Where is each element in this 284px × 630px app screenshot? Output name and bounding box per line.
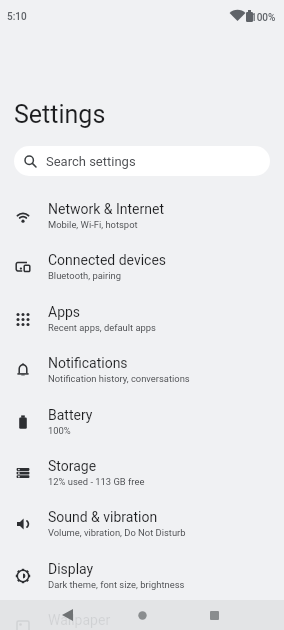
button[interactable]: Wallpaper — [0, 601, 284, 630]
staticText: 12% used - 113 GB free — [48, 476, 145, 487]
button[interactable]: Apps — [0, 293, 284, 344]
staticText: 5:10 — [7, 11, 27, 23]
button[interactable]: Notifications — [0, 344, 284, 395]
button[interactable]: Display — [0, 550, 284, 601]
staticText: Volume, vibration, Do Not Disturb — [48, 527, 186, 538]
staticText: Bluetooth, pairing — [48, 270, 121, 281]
staticText: Recent apps, default apps — [48, 322, 156, 333]
staticText: Battery — [48, 407, 93, 423]
staticText: Search settings — [46, 154, 136, 169]
button[interactable]: Connected devices — [0, 241, 284, 292]
button[interactable] — [130, 600, 154, 630]
staticText: Connected devices — [48, 252, 167, 268]
button[interactable] — [202, 600, 226, 630]
staticText: 100% — [251, 12, 276, 24]
button[interactable]: Network & Internet — [0, 190, 284, 241]
staticText: Apps — [48, 304, 81, 320]
staticText: Network & Internet — [48, 201, 165, 217]
button[interactable]: Battery — [0, 396, 284, 447]
staticText: Wallpaper — [48, 612, 111, 628]
button[interactable]: Sound & vibration — [0, 498, 284, 549]
staticText: Notifications — [48, 355, 128, 371]
button[interactable]: Search settings — [14, 146, 270, 176]
staticText: Display — [48, 561, 94, 577]
button[interactable]: Storage — [0, 447, 284, 498]
staticText: 100% — [48, 425, 71, 436]
staticText: Notification history, conversations — [48, 373, 190, 384]
staticText: Dark theme, font size, brightness — [48, 579, 185, 590]
staticText: Sound & vibration — [48, 509, 158, 525]
staticText: Storage — [48, 458, 97, 474]
staticText: Settings — [14, 100, 106, 129]
staticText: Mobile, Wi-Fi, hotspot — [48, 219, 138, 230]
button[interactable] — [55, 600, 79, 630]
